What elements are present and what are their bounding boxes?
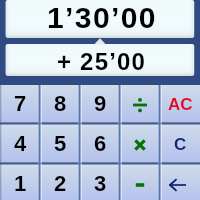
- button[interactable]: 8: [40, 85, 80, 123]
- button[interactable]: Backspace: [160, 165, 200, 200]
- button[interactable]: Minus: [120, 165, 160, 200]
- button[interactable]: 9: [80, 85, 120, 123]
- button[interactable]: C: [160, 125, 200, 163]
- staticText: 8: [54, 91, 67, 116]
- button[interactable]: 1: [0, 165, 40, 200]
- staticText: 1: [14, 171, 27, 196]
- button[interactable]: 7: [0, 85, 40, 123]
- other: Multiply: [128, 133, 152, 157]
- staticText: C: [174, 135, 187, 154]
- other: Backspace: [166, 173, 190, 197]
- staticText: 4: [14, 131, 27, 156]
- button[interactable]: 4: [0, 125, 40, 163]
- button[interactable]: 2: [40, 165, 80, 200]
- other: Divide: [128, 93, 152, 117]
- button[interactable]: 6: [80, 125, 120, 163]
- staticText: AC: [168, 95, 193, 114]
- button[interactable]: 3: [80, 165, 120, 200]
- staticText: 1’30’00: [47, 1, 157, 35]
- staticText: + 25’00: [57, 48, 147, 75]
- staticText: 5: [54, 131, 67, 156]
- staticText: 7: [14, 91, 27, 116]
- button[interactable]: Multiply: [120, 125, 160, 163]
- button[interactable]: 5: [40, 125, 80, 163]
- button[interactable]: Divide: [120, 85, 160, 123]
- button[interactable]: AC: [160, 85, 200, 123]
- staticText: 6: [94, 131, 107, 156]
- staticText: 2: [54, 171, 67, 196]
- staticText: 9: [94, 91, 107, 116]
- other: Minus: [128, 173, 152, 197]
- staticText: 3: [94, 171, 107, 196]
